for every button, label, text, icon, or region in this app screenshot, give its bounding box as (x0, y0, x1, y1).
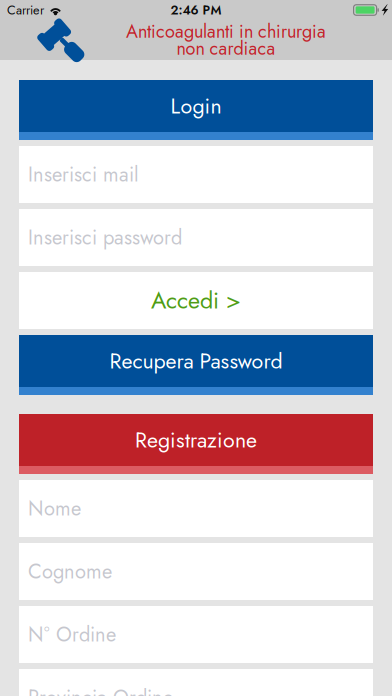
staticText: Accedi > (151, 284, 241, 317)
staticText: Login (170, 91, 221, 121)
staticText: Registrazione (135, 425, 257, 455)
staticText: Cognome (28, 557, 112, 586)
staticText: non cardiaca (176, 35, 275, 61)
button[interactable]: Recupera Password (19, 335, 373, 395)
staticText: Nome (28, 494, 81, 523)
button[interactable]: Login (19, 80, 373, 140)
staticText: Recupera Password (109, 346, 282, 376)
button[interactable]: Registrazione (19, 414, 373, 474)
button[interactable]: Provincia Ordine (19, 669, 373, 696)
staticText: Anticoagulanti in chirurgia (126, 18, 326, 44)
button[interactable]: Cognome (19, 543, 373, 600)
staticText: Inserisci password (28, 223, 182, 252)
button[interactable]: N° Ordine (19, 606, 373, 663)
button[interactable]: App icon (38, 18, 84, 62)
staticText: Inserisci mail (28, 160, 139, 189)
staticText: N° Ordine (28, 620, 116, 649)
button[interactable]: Accedi > (19, 272, 373, 329)
staticText: Carrier (7, 1, 44, 19)
staticText: 2:46 PM (170, 1, 221, 19)
staticText: Provincia Ordine (28, 683, 173, 696)
button[interactable]: Nome (19, 480, 373, 537)
button[interactable]: Inserisci mail (19, 146, 373, 203)
button[interactable]: Inserisci password (19, 209, 373, 266)
